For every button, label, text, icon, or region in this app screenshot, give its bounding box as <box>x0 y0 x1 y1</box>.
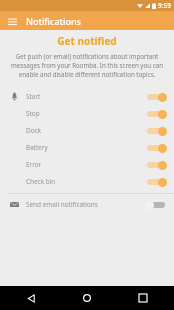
button[interactable]: Home <box>78 289 96 307</box>
staticText: 9:59 <box>158 1 171 10</box>
staticText: Battery <box>26 143 145 152</box>
button[interactable]: Battery <box>0 139 174 156</box>
button[interactable]: Error <box>0 156 174 173</box>
staticText: Notifications <box>26 15 81 27</box>
button[interactable]: Send email notifications <box>0 196 174 213</box>
button[interactable]: Back <box>22 289 40 307</box>
button[interactable]: Open navigation drawer <box>4 13 20 29</box>
button[interactable]: Dock <box>0 122 174 139</box>
button[interactable]: Stop <box>0 105 174 122</box>
staticText: Get push (or email) notifications about … <box>9 52 165 79</box>
staticText: Send email notifications <box>26 200 145 209</box>
staticText: Error <box>26 160 145 169</box>
staticText: Stop <box>26 109 145 118</box>
staticText: Dock <box>26 126 145 135</box>
button[interactable]: Check bin <box>0 173 174 190</box>
staticText: Get notified <box>0 34 174 48</box>
button[interactable]: Start <box>0 88 174 105</box>
button[interactable]: Recent apps <box>134 289 152 307</box>
staticText: Start <box>26 92 145 101</box>
staticText: Check bin <box>26 177 145 186</box>
